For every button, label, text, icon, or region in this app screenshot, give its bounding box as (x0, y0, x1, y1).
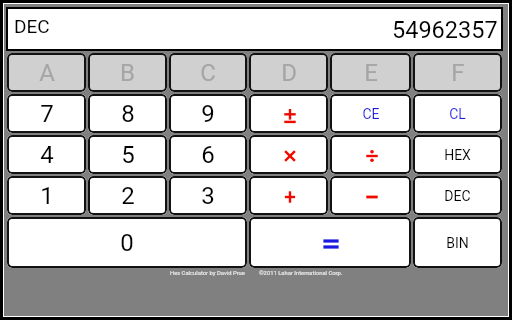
staticText: DEC (444, 188, 471, 204)
staticText: 8 (121, 100, 135, 128)
button[interactable]: CE (330, 94, 411, 133)
staticText: 4 (40, 141, 54, 169)
button[interactable]: B (88, 53, 167, 92)
button[interactable]: CL (413, 94, 502, 133)
staticText: C (200, 59, 216, 87)
button[interactable]: equals (249, 217, 411, 268)
staticText: ©2011 Lahar International Corp. (259, 270, 343, 277)
staticText: DEC (14, 15, 50, 37)
staticText: 3 (201, 182, 215, 210)
button[interactable]: plus minus (249, 94, 328, 133)
button[interactable]: 5 (88, 135, 167, 174)
button[interactable]: C (169, 53, 247, 92)
staticText: CL (449, 106, 466, 122)
button[interactable]: 7 (7, 94, 86, 133)
button[interactable]: E (330, 53, 411, 92)
staticText: HEX (444, 147, 471, 163)
staticText: 5 (121, 141, 135, 169)
button[interactable]: DEC (413, 176, 502, 215)
staticText: E (364, 59, 378, 87)
button[interactable]: plus (249, 176, 328, 215)
staticText: D (281, 59, 297, 87)
button[interactable]: BIN (413, 217, 502, 268)
button[interactable]: 3 (169, 176, 247, 215)
button[interactable]: 9 (169, 94, 247, 133)
staticText: 6 (201, 141, 215, 169)
button[interactable]: 0 (7, 217, 247, 268)
staticText: 54962357 (392, 16, 498, 44)
staticText: F (451, 59, 465, 87)
button[interactable]: multiply (249, 135, 328, 174)
staticText: 9 (201, 100, 215, 128)
staticText: A (39, 59, 55, 87)
button[interactable]: 1 (7, 176, 86, 215)
button[interactable]: D (249, 53, 328, 92)
staticText: 1 (40, 182, 54, 210)
button[interactable]: divide (330, 135, 411, 174)
button[interactable]: minus (330, 176, 411, 215)
staticText: BIN (446, 235, 469, 251)
staticText: 0 (120, 229, 134, 257)
staticText: CE (362, 106, 380, 122)
button[interactable]: 4 (7, 135, 86, 174)
button[interactable]: 2 (88, 176, 167, 215)
button[interactable]: HEX (413, 135, 502, 174)
staticText: 7 (40, 100, 54, 128)
button[interactable]: F (413, 53, 502, 92)
staticText: Hex Calculator by David Prue (170, 270, 245, 277)
button[interactable]: 6 (169, 135, 247, 174)
staticText: 2 (121, 182, 135, 210)
staticText: B (120, 59, 135, 87)
button[interactable]: 8 (88, 94, 167, 133)
button[interactable]: A (7, 53, 86, 92)
